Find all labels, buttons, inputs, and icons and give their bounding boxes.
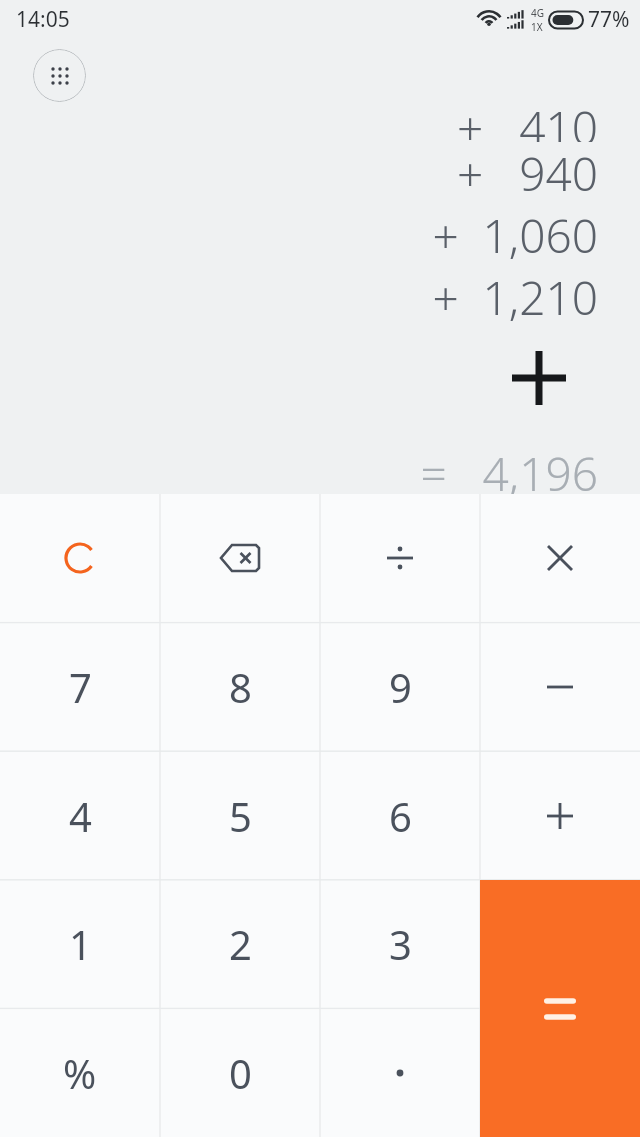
button[interactable]: 8 (160, 622, 320, 751)
button[interactable]: 0 (160, 1008, 320, 1137)
staticText: 1X (531, 20, 543, 34)
staticText: = 4,196 (420, 442, 598, 494)
button[interactable]: 2 (160, 880, 320, 1008)
button[interactable]: minus (480, 622, 640, 751)
button[interactable]: 6 (320, 751, 480, 880)
button[interactable]: divide (320, 494, 480, 622)
button[interactable]: 3 (320, 880, 480, 1008)
staticText: 6 (389, 789, 412, 843)
button[interactable]: Apps (33, 49, 86, 102)
staticText: 8 (229, 660, 252, 714)
staticText: 1 (69, 917, 92, 971)
staticText: + 410 (457, 96, 598, 142)
staticText: 9 (389, 660, 412, 714)
staticText: 3 (389, 917, 412, 971)
staticText: + 940 (457, 142, 598, 204)
staticText: 0 (229, 1046, 252, 1100)
staticText: 4 (69, 789, 92, 843)
button[interactable]: 1 (0, 880, 160, 1008)
staticText: 14:05 (16, 5, 70, 34)
button[interactable]: equals (480, 880, 640, 1137)
button[interactable]: plus (480, 751, 640, 880)
staticText: + 1,210 (432, 266, 598, 328)
staticText: 5 (229, 789, 252, 843)
button[interactable]: 5 (160, 751, 320, 880)
button[interactable]: clear (0, 494, 160, 622)
button[interactable]: 9 (320, 622, 480, 751)
button[interactable]: multiply (480, 494, 640, 622)
button[interactable]: 4 (0, 751, 160, 880)
button[interactable]: backspace (160, 494, 320, 622)
staticText: 2 (229, 917, 252, 971)
staticText: 77% (588, 5, 630, 34)
staticText: 4G (531, 6, 544, 20)
staticText: + 1,060 (432, 204, 598, 266)
staticText: % (63, 1046, 97, 1100)
button[interactable]: 7 (0, 622, 160, 751)
button[interactable]: percent (0, 1008, 160, 1137)
button[interactable]: decimal point (320, 1008, 480, 1137)
staticText: 7 (69, 660, 92, 714)
